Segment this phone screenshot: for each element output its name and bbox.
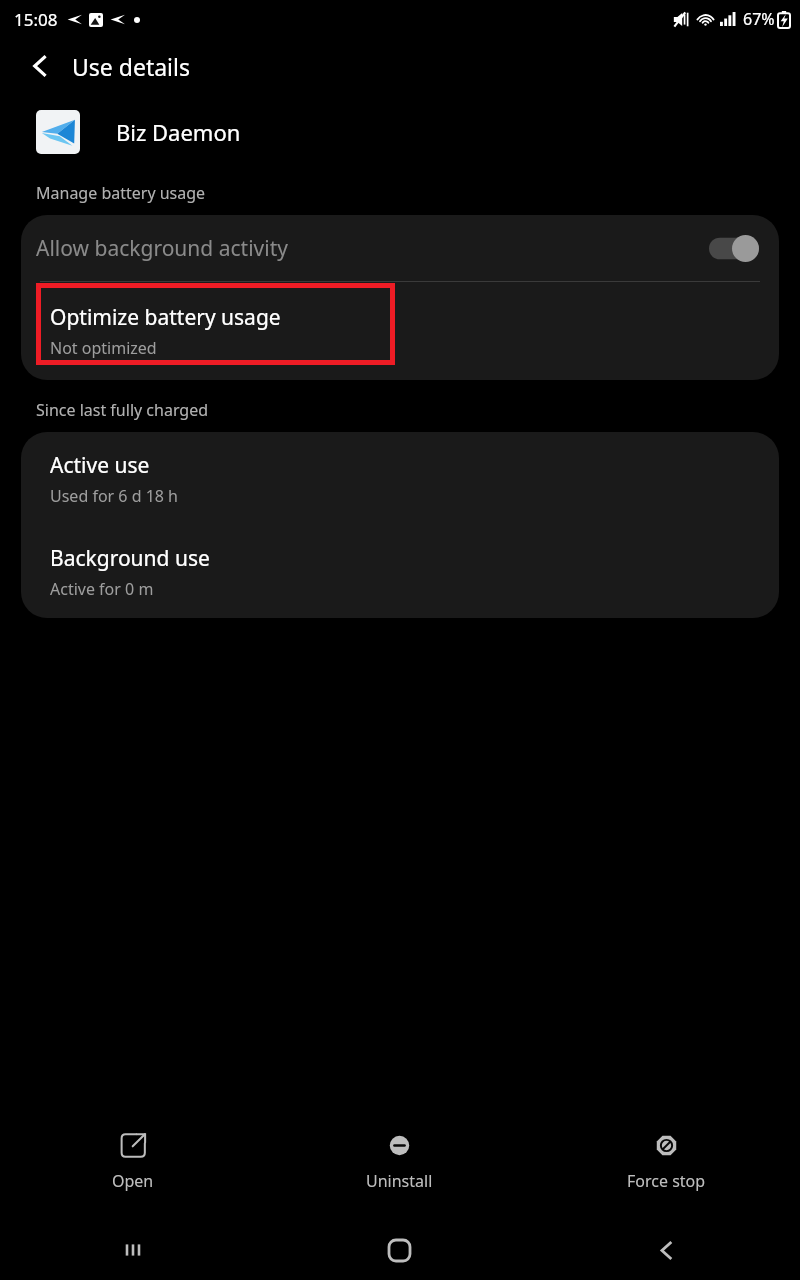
button[interactable]: Back: [17, 43, 63, 89]
button[interactable]: Recent apps: [0, 1220, 266, 1280]
staticText: Manage battery usage: [36, 182, 206, 204]
button[interactable]: Background use: [21, 525, 779, 618]
button[interactable]: Uninstall app: [266, 1120, 533, 1204]
staticText: 67%: [743, 8, 775, 30]
staticText: Background use: [50, 544, 210, 573]
button[interactable]: Home: [266, 1220, 533, 1280]
button[interactable]: Allow background activity: [21, 215, 779, 281]
staticText: Use details: [72, 51, 190, 82]
staticText: Active for 0 m: [50, 578, 154, 600]
staticText: Optimize battery usage: [50, 303, 281, 332]
staticText: Uninstall: [366, 1170, 433, 1192]
staticText: Active use: [50, 451, 150, 480]
button[interactable]: Open app: [0, 1120, 266, 1204]
staticText: Allow background activity: [36, 234, 709, 263]
button[interactable]: Force stop app: [533, 1120, 800, 1204]
staticText: Since last fully charged: [36, 399, 209, 421]
staticText: Not optimized: [50, 337, 157, 359]
button[interactable]: Active use: [21, 432, 779, 525]
staticText: Biz Daemon: [116, 117, 241, 147]
staticText: 15:08: [14, 8, 58, 31]
button[interactable]: Back: [533, 1220, 800, 1280]
staticText: Force stop: [627, 1170, 706, 1192]
button[interactable]: Optimize battery usage: [21, 282, 779, 380]
staticText: Used for 6 d 18 h: [50, 485, 179, 507]
staticText: Open: [112, 1170, 154, 1192]
